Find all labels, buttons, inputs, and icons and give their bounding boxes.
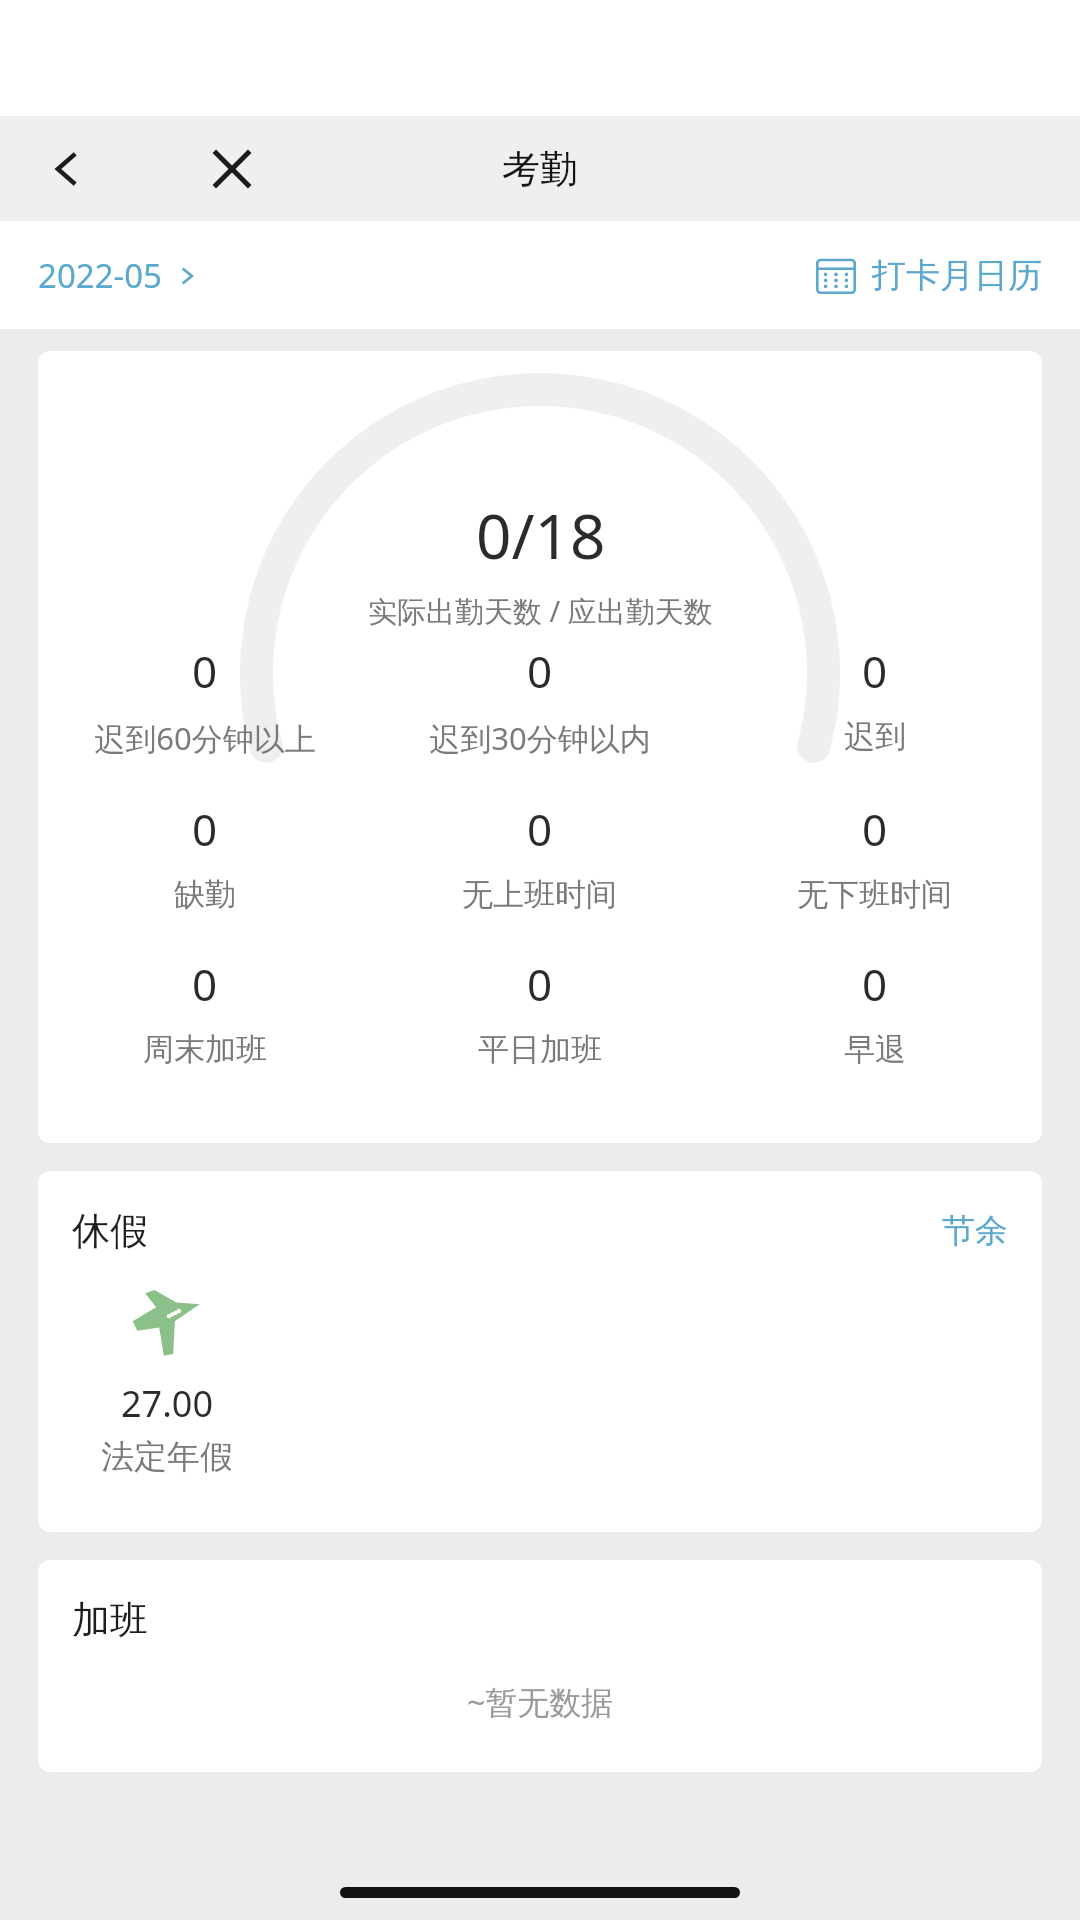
staticText: 0 — [862, 641, 888, 701]
button[interactable]: 打卡月日历 — [816, 254, 1042, 297]
staticText: 周末加班 — [143, 1030, 267, 1069]
staticText: 法定年假 — [101, 1436, 233, 1478]
staticText: 无上班时间 — [462, 875, 617, 914]
button[interactable]: 0 — [38, 799, 372, 914]
button[interactable]: 0 — [372, 954, 707, 1069]
staticText: 0 — [192, 641, 218, 701]
button[interactable]: Close — [196, 133, 268, 205]
staticText: 迟到 — [844, 717, 906, 756]
staticText: 迟到60分钟以上 — [94, 717, 316, 759]
staticText: 0 — [527, 641, 553, 701]
staticText: 0 — [862, 799, 888, 859]
staticText: 0 — [192, 799, 218, 859]
button[interactable]: 0 — [707, 641, 1042, 756]
staticText: 0/18 — [476, 493, 606, 577]
staticText: 27.00 — [121, 1379, 214, 1428]
staticText: 加班 — [72, 1596, 148, 1644]
staticText: 2022-05 — [38, 253, 162, 298]
staticText: 实际出勤天数 / 应出勤天数 — [368, 591, 713, 631]
button[interactable]: 节余 — [942, 1210, 1008, 1252]
button[interactable]: 0 — [38, 641, 372, 759]
button[interactable]: 0 — [38, 954, 372, 1069]
staticText: 早退 — [844, 1030, 906, 1069]
button[interactable]: 0 — [372, 799, 707, 914]
staticText: 0 — [527, 799, 553, 859]
staticText: 无下班时间 — [797, 875, 952, 914]
button[interactable]: 0 — [707, 799, 1042, 914]
staticText: 考勤 — [502, 145, 578, 193]
button[interactable]: 0 — [707, 954, 1042, 1069]
button[interactable]: Back — [30, 133, 102, 205]
staticText: 0 — [862, 954, 888, 1014]
staticText: 休假 — [72, 1207, 148, 1255]
staticText: 缺勤 — [174, 875, 236, 914]
staticText: 打卡月日历 — [872, 254, 1042, 297]
button[interactable]: 2022-05 — [38, 253, 198, 298]
button[interactable]: 0 — [372, 641, 707, 759]
staticText: 0 — [527, 954, 553, 1014]
staticText: 迟到30分钟以内 — [429, 717, 651, 759]
staticText: ~暂无数据 — [467, 1680, 614, 1724]
staticText: 平日加班 — [478, 1030, 602, 1069]
staticText: 0 — [192, 954, 218, 1014]
